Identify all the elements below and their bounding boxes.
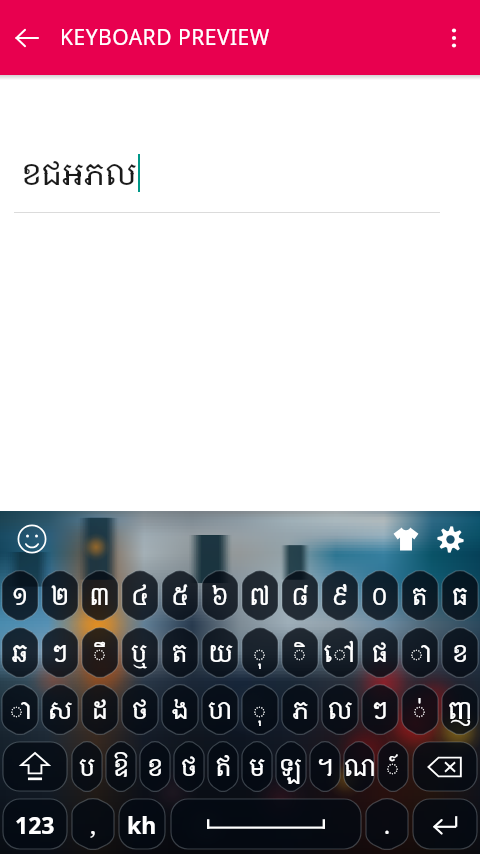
staticText: ហ: [208, 693, 233, 726]
button[interactable]: ឥ: [208, 741, 238, 792]
staticText: ។: [316, 750, 335, 783]
staticText: ញ: [448, 693, 473, 726]
staticText: ,: [90, 808, 96, 841]
staticText: 123: [15, 809, 55, 840]
button[interactable]: ២: [42, 570, 78, 621]
staticText: ត: [412, 579, 428, 612]
button[interactable]: ដ: [82, 684, 118, 735]
staticText: ៗ: [51, 636, 69, 669]
staticText: ៗ: [371, 693, 389, 726]
staticText: ៩: [331, 579, 350, 612]
button[interactable]: ុ: [242, 684, 278, 735]
button[interactable]: ៗ: [42, 627, 78, 678]
staticText: ៤: [131, 579, 150, 612]
staticText: យ: [208, 636, 233, 669]
staticText: ០: [371, 579, 389, 612]
button[interactable]: ភ: [282, 684, 318, 735]
button[interactable]: ១: [2, 570, 38, 621]
button[interactable]: ៦: [202, 570, 238, 621]
button[interactable]: More options: [428, 12, 480, 64]
staticText: ុ: [252, 693, 268, 726]
button[interactable]: ង: [162, 684, 198, 735]
staticText: ុ: [252, 636, 268, 669]
staticText: ៥: [171, 579, 190, 612]
staticText: ឱ: [113, 750, 130, 783]
button[interactable]: ០: [362, 570, 398, 621]
button[interactable]: ៧: [242, 570, 278, 621]
staticText: ធ: [452, 579, 468, 612]
button[interactable]: ៍: [378, 741, 408, 792]
button[interactable]: ់: [402, 684, 438, 735]
button[interactable]: ញ: [442, 684, 478, 735]
staticText: ា: [9, 693, 32, 726]
button[interactable]: .: [366, 798, 408, 850]
staticText: ប: [79, 750, 95, 783]
button[interactable]: ៅ: [322, 627, 358, 678]
staticText: ឡ: [280, 750, 303, 783]
button[interactable]: Emoji: [8, 515, 56, 563]
button[interactable]: ា: [2, 684, 38, 735]
staticText: ៣: [89, 579, 111, 612]
button[interactable]: ៥: [162, 570, 198, 621]
button[interactable]: Settings: [428, 517, 472, 561]
button[interactable]: ៨: [282, 570, 318, 621]
button[interactable]: ថ: [122, 684, 158, 735]
staticText: ផ: [372, 636, 388, 669]
button[interactable]: ធ: [442, 570, 478, 621]
button[interactable]: ៩: [322, 570, 358, 621]
button[interactable]: ៗ: [362, 684, 398, 735]
button[interactable]: ស: [42, 684, 78, 735]
button[interactable]: ផ: [362, 627, 398, 678]
button[interactable]: ខ: [140, 741, 170, 792]
staticText: ៦: [211, 579, 229, 612]
button[interactable]: ត: [162, 627, 198, 678]
staticText: ថ: [181, 750, 197, 783]
staticText: ខ: [147, 750, 163, 783]
staticText: ៅ: [324, 636, 357, 669]
button[interactable]: ឬ: [122, 627, 158, 678]
button[interactable]: ,: [72, 798, 114, 850]
button[interactable]: ុ: [242, 627, 278, 678]
button[interactable]: ា: [402, 627, 438, 678]
button[interactable]: Enter: [413, 799, 477, 849]
staticText: ់: [412, 693, 428, 726]
button[interactable]: ល: [322, 684, 358, 735]
button[interactable]: ថ: [174, 741, 204, 792]
button[interactable]: ។: [310, 741, 340, 792]
button[interactable]: ឹ: [82, 627, 118, 678]
button[interactable]: Navigate up: [0, 11, 54, 65]
staticText: ២: [51, 579, 70, 612]
staticText: ល: [328, 693, 353, 726]
button[interactable]: ហ: [202, 684, 238, 735]
button[interactable]: ប: [72, 741, 102, 792]
staticText: ថ: [132, 693, 148, 726]
button[interactable]: ម: [242, 741, 272, 792]
staticText: ា: [409, 636, 432, 669]
button[interactable]: ឡ: [276, 741, 306, 792]
staticText: ៧: [249, 579, 271, 612]
button[interactable]: ៤: [122, 570, 158, 621]
button[interactable]: Space: [171, 799, 361, 849]
staticText: ម: [249, 750, 265, 783]
staticText: ខ: [452, 636, 468, 669]
staticText: ង: [172, 693, 189, 726]
button[interactable]: Shift: [3, 742, 67, 791]
staticText: ខជអភល: [21, 152, 137, 194]
button[interactable]: Theme: [384, 517, 428, 561]
staticText: ណ: [344, 750, 374, 783]
button[interactable]: យ: [202, 627, 238, 678]
button[interactable]: ត: [402, 570, 438, 621]
button[interactable]: ិ: [282, 627, 318, 678]
button[interactable]: kh: [119, 799, 165, 849]
button[interactable]: ឱ: [106, 741, 136, 792]
button[interactable]: ខ: [442, 627, 478, 678]
button[interactable]: ៣: [82, 570, 118, 621]
button[interactable]: ណ: [344, 741, 374, 792]
button[interactable]: Delete: [413, 742, 477, 791]
staticText: ១: [12, 579, 29, 612]
staticText: kh: [127, 809, 157, 840]
button[interactable]: ឆ: [2, 627, 38, 678]
button[interactable]: 123: [3, 799, 67, 849]
staticText: ស: [48, 693, 73, 726]
staticText: .: [384, 808, 390, 841]
